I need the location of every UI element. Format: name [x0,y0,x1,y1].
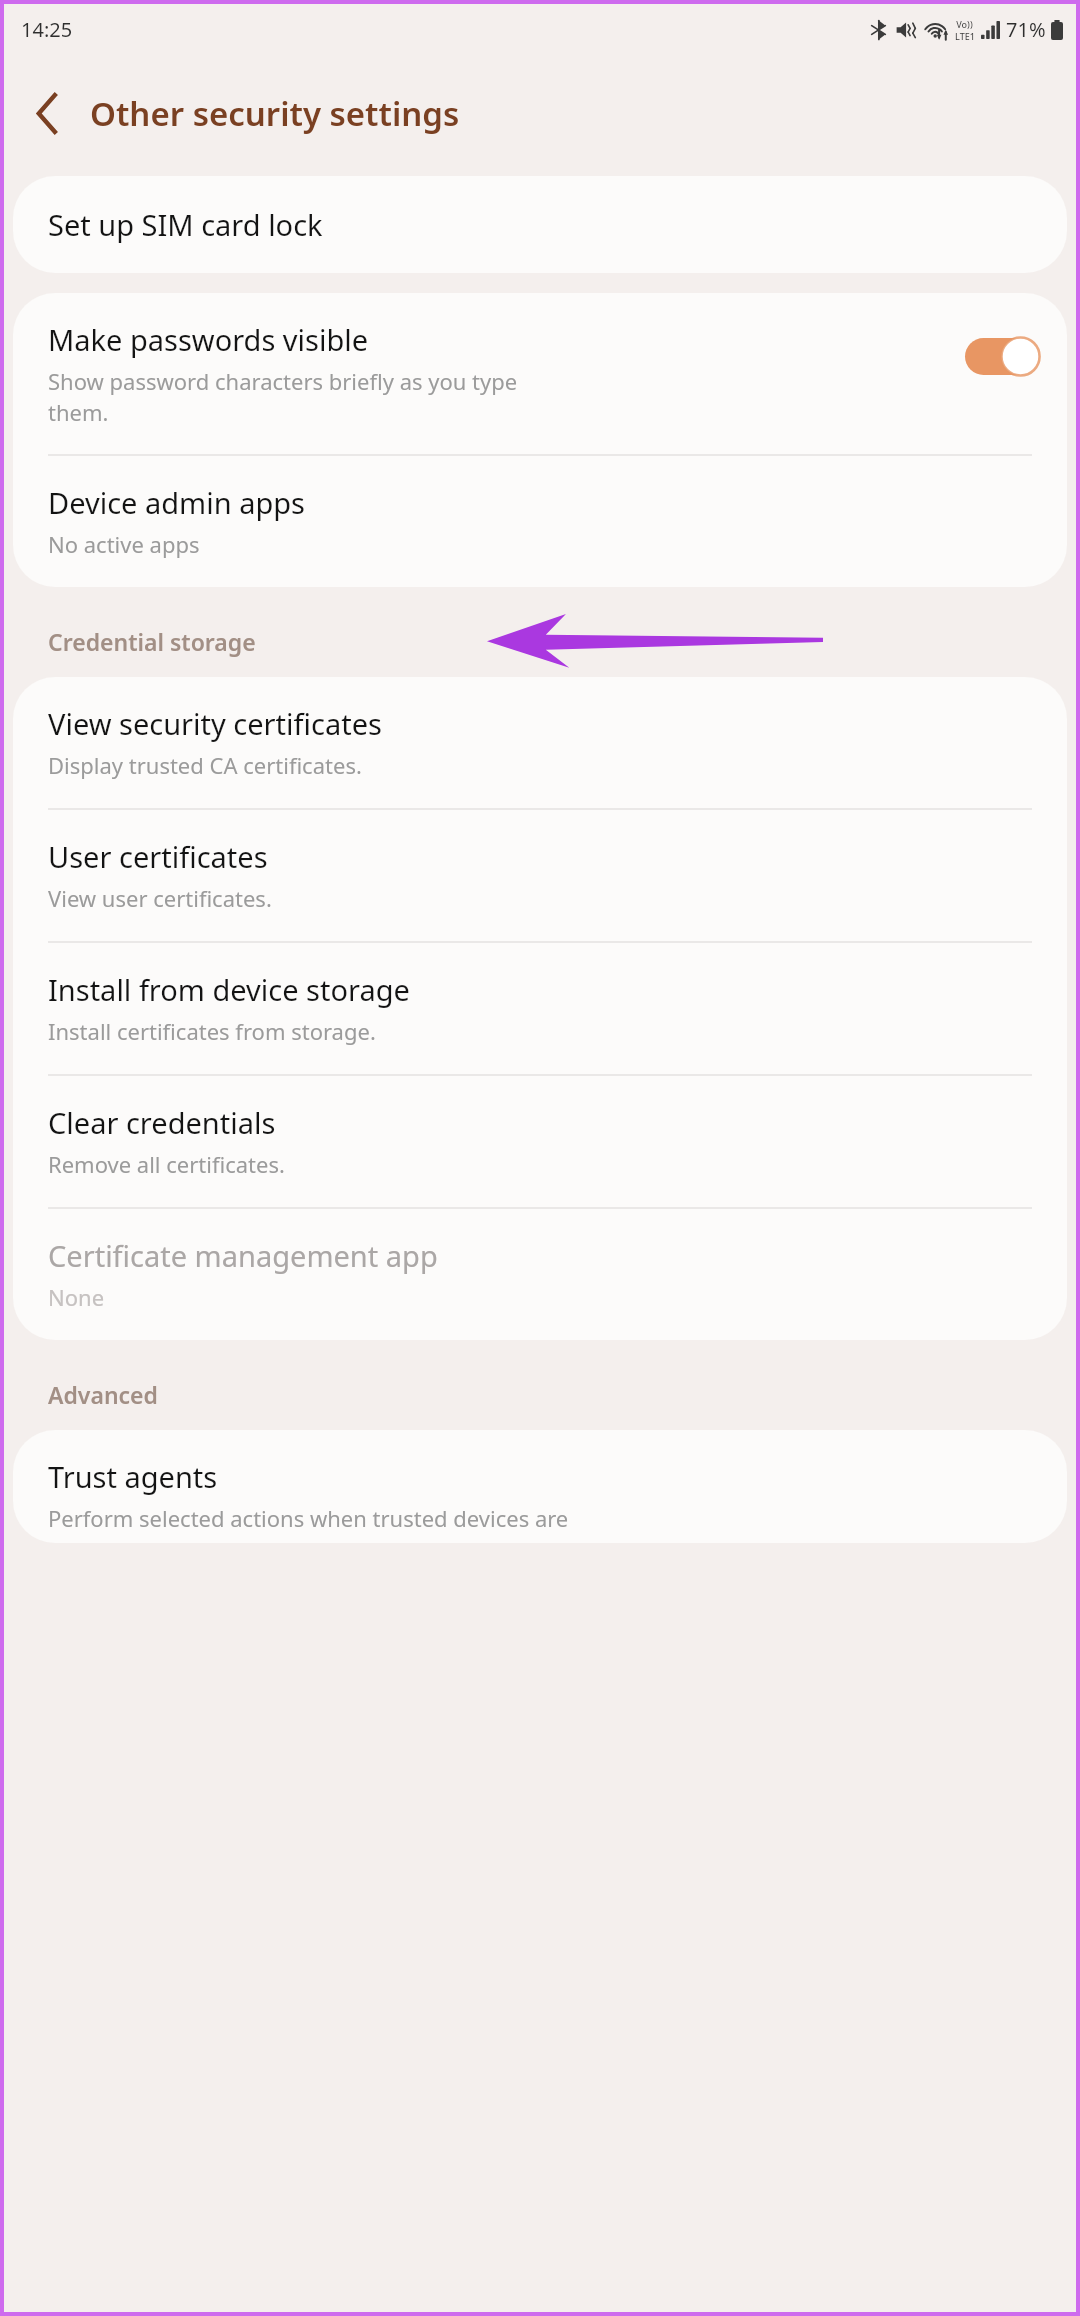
staticText: Device admin apps [48,483,305,522]
staticText: Advanced [48,1379,158,1410]
button[interactable]: Set up SIM card lock [13,176,1067,273]
staticText: Make passwords visible [48,320,369,359]
staticText: View user certificates. [48,883,272,913]
staticText: Install certificates from storage. [48,1016,376,1046]
staticText: Install from device storage [48,970,410,1009]
staticText: Show password characters briefly as you … [48,366,518,428]
button[interactable]: Device admin apps [13,456,1067,587]
button[interactable]: Back [18,84,76,142]
button[interactable]: Trust agents [13,1430,1067,1543]
staticText: None [48,1282,105,1312]
staticText: 71% [1006,16,1046,43]
button[interactable]: View security certificates [13,677,1067,808]
staticText: User certificates [48,837,268,876]
staticText: LTE1 [955,30,975,42]
button[interactable]: User certificates [13,810,1067,941]
staticText: Other security settings [90,91,460,136]
staticText: Credential storage [48,626,256,657]
button[interactable]: Install from device storage [13,943,1067,1074]
staticText: Display trusted CA certificates. [48,750,362,780]
staticText: 14:25 [21,16,73,43]
staticText: Perform selected actions when trusted de… [48,1503,569,1533]
staticText: Set up SIM card lock [48,205,323,244]
button[interactable]: Clear credentials [13,1076,1067,1207]
button[interactable]: Make passwords visible [965,338,1039,375]
staticText: Certificate management app [48,1236,438,1275]
staticText: Vo)) [956,18,973,30]
staticText: No active apps [48,529,200,559]
staticText: Clear credentials [48,1103,276,1142]
button[interactable]: Make passwords visible [13,293,1067,454]
staticText: View security certificates [48,704,382,743]
staticText: Remove all certificates. [48,1149,285,1179]
staticText: Trust agents [48,1457,218,1496]
